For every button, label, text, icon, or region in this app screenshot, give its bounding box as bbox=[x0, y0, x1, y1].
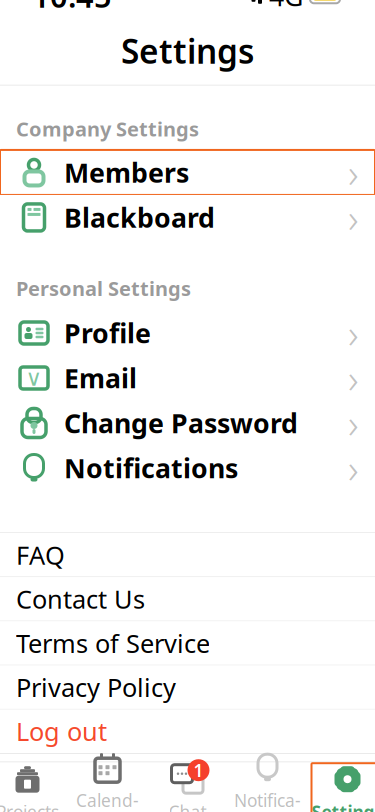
staticText: ∨ bbox=[25, 365, 42, 391]
staticText: › bbox=[348, 351, 359, 405]
staticText: › bbox=[348, 146, 359, 199]
staticText: Settings bbox=[311, 800, 375, 812]
staticText: Members bbox=[64, 155, 189, 190]
staticText: 1 bbox=[193, 759, 203, 782]
button[interactable]: Calendar bbox=[71, 763, 143, 812]
staticText: Chat bbox=[168, 800, 206, 812]
button[interactable]: Chat bbox=[151, 763, 223, 812]
staticText: Profile bbox=[64, 315, 151, 351]
staticText: FAQ bbox=[16, 538, 65, 572]
staticText: Change Password bbox=[64, 405, 298, 441]
staticText: Blackboard bbox=[64, 200, 215, 235]
button[interactable]: Change Password bbox=[0, 400, 375, 445]
staticText: Email bbox=[64, 360, 137, 396]
button[interactable]: Notifications bbox=[231, 763, 303, 812]
button[interactable]: ∨ bbox=[0, 355, 375, 400]
button[interactable]: Notifications bbox=[0, 445, 375, 490]
staticText: Log out bbox=[16, 714, 107, 748]
staticText: › bbox=[348, 396, 359, 450]
staticText: Terms of Service bbox=[16, 626, 210, 660]
button[interactable]: Members bbox=[0, 150, 375, 195]
button[interactable]: Settings bbox=[311, 763, 375, 812]
button[interactable]: Log out bbox=[0, 709, 375, 753]
button[interactable]: Terms of Service bbox=[0, 621, 375, 665]
staticText: Notifications bbox=[234, 789, 301, 812]
staticText: Personal Settings bbox=[16, 275, 191, 301]
staticText: Notifications bbox=[64, 450, 238, 486]
button[interactable]: Projects bbox=[0, 763, 63, 812]
staticText: › bbox=[348, 306, 359, 360]
staticText: Privacy Policy bbox=[16, 670, 176, 704]
staticText: Settings bbox=[121, 29, 254, 73]
staticText: 10:45 bbox=[32, 0, 112, 16]
button[interactable]: Profile bbox=[0, 310, 375, 355]
staticText: Contact Us bbox=[16, 582, 145, 616]
staticText: 4G bbox=[269, 0, 303, 13]
button[interactable]: Contact Us bbox=[0, 577, 375, 621]
staticText: › bbox=[348, 441, 359, 495]
button[interactable]: Blackboard bbox=[0, 195, 375, 240]
staticText: Projects bbox=[0, 800, 59, 812]
button[interactable]: Privacy Policy bbox=[0, 665, 375, 709]
staticText: Company Settings bbox=[16, 115, 199, 142]
button[interactable]: FAQ bbox=[0, 533, 375, 577]
staticText: › bbox=[348, 191, 359, 244]
staticText: Calendar bbox=[76, 789, 139, 812]
